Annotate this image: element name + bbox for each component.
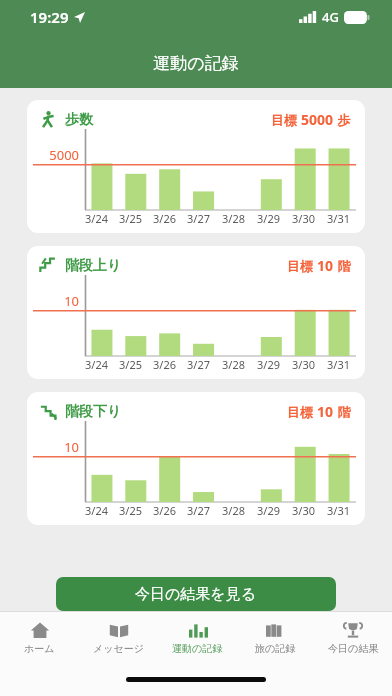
staticText: 10 <box>317 402 334 421</box>
staticText: 4G <box>322 8 339 26</box>
button[interactable]: 今日の結果を見る <box>56 577 336 611</box>
staticText: 3/31 <box>327 211 350 226</box>
staticText: 3/25 <box>119 503 142 518</box>
staticText: 3/30 <box>292 357 315 372</box>
staticText: 3/24 <box>85 503 108 518</box>
staticText: 歩数 <box>65 111 93 129</box>
staticText: 今日の結果 <box>328 642 379 655</box>
button[interactable]: 歩数 <box>27 100 365 233</box>
staticText: 3/31 <box>327 503 350 518</box>
staticText: 目標 <box>287 257 317 275</box>
staticText: 階 <box>334 257 351 275</box>
staticText: 3/31 <box>327 357 350 372</box>
staticText: 3/30 <box>292 503 315 518</box>
staticText: 3/29 <box>257 357 280 372</box>
staticText: 3/26 <box>153 211 176 226</box>
staticText: 今日の結果を見る <box>135 585 257 604</box>
staticText: 10 <box>27 292 79 310</box>
staticText: 10 <box>27 438 79 456</box>
button[interactable]: 階段下り <box>27 392 365 525</box>
staticText: 運動の記録 <box>0 53 392 74</box>
staticText: ホーム <box>24 642 55 655</box>
staticText: 目標 <box>271 111 301 129</box>
staticText: 3/27 <box>187 503 210 518</box>
staticText: メッセージ <box>93 642 144 655</box>
staticText: 運動の記録 <box>172 642 223 655</box>
staticText: 歩 <box>334 111 351 129</box>
staticText: 3/25 <box>119 357 142 372</box>
staticText: 3/28 <box>222 503 245 518</box>
staticText: 3/29 <box>257 503 280 518</box>
staticText: 3/26 <box>153 357 176 372</box>
button[interactable]: 旅の記録 <box>236 620 314 655</box>
staticText: 3/27 <box>187 211 210 226</box>
staticText: 3/28 <box>222 357 245 372</box>
staticText: 階段下り <box>65 403 122 421</box>
staticText: 3/27 <box>187 357 210 372</box>
button[interactable]: 運動の記録 <box>158 620 236 655</box>
button[interactable]: メッセージ <box>79 620 158 655</box>
button[interactable]: 今日の結果 <box>314 620 392 655</box>
button[interactable]: 階段上り <box>27 246 365 379</box>
staticText: 3/26 <box>153 503 176 518</box>
staticText: 10 <box>317 256 334 275</box>
staticText: 階段上り <box>65 257 122 275</box>
staticText: 階 <box>334 403 351 421</box>
staticText: 3/29 <box>257 211 280 226</box>
button[interactable]: ホーム <box>0 620 79 655</box>
staticText: 旅の記録 <box>255 642 296 655</box>
staticText: 5000 <box>301 110 334 129</box>
staticText: 5000 <box>27 146 79 164</box>
staticText: 3/28 <box>222 211 245 226</box>
staticText: 目標 <box>287 403 317 421</box>
staticText: 3/25 <box>119 211 142 226</box>
staticText: 3/30 <box>292 211 315 226</box>
staticText: 3/24 <box>85 357 108 372</box>
staticText: 19:29 <box>30 7 69 27</box>
staticText: 3/24 <box>85 211 108 226</box>
